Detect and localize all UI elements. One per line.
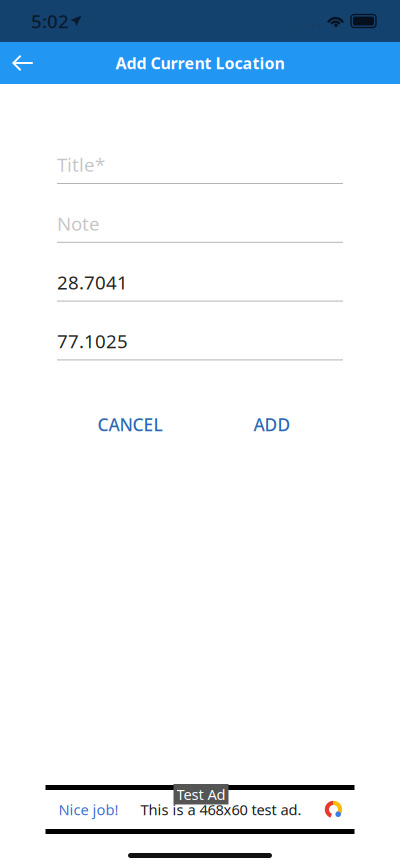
staticText: ADD <box>253 413 290 436</box>
staticText: Title* <box>57 152 105 177</box>
button[interactable]: CANCEL <box>80 413 180 435</box>
staticText: Test Ad <box>176 784 225 804</box>
staticText: 77.1025 <box>57 329 128 353</box>
button[interactable]: Back <box>0 42 46 84</box>
staticText: CANCEL <box>97 413 162 436</box>
staticText: 28.7041 <box>57 270 128 295</box>
staticText: Note <box>57 211 100 236</box>
button[interactable]: Nice job! <box>45 785 354 834</box>
staticText: Add Current Location <box>115 52 284 74</box>
staticText: This is a 468x60 test ad. <box>140 800 301 819</box>
button[interactable]: ADD <box>222 413 322 435</box>
staticText: Nice job! <box>58 800 118 819</box>
staticText: 5:02 <box>31 9 69 33</box>
